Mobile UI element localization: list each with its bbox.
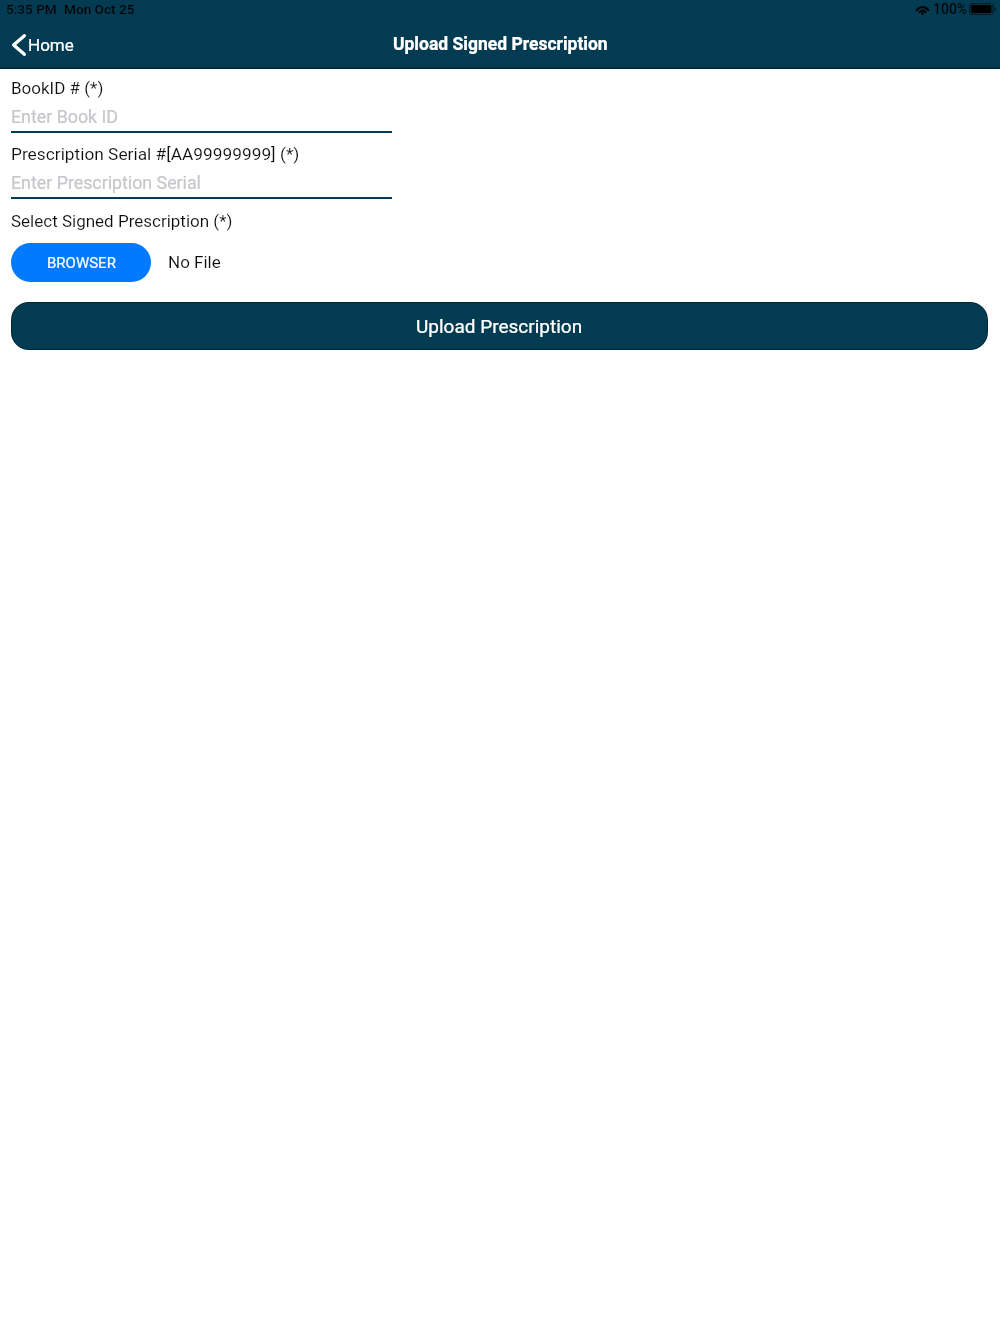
staticText: Select Signed Prescription (*) [11,211,233,231]
staticText: Enter Book ID [11,106,118,127]
staticText: Mon Oct 25 [64,1,135,17]
button[interactable]: Enter Book ID [11,102,392,134]
staticText: Home [28,35,74,55]
staticText: 100% [933,1,968,17]
staticText: Prescription Serial #[AA99999999] (*) [11,144,300,164]
staticText: BookID # (*) [11,78,104,98]
staticText: No File [168,252,221,272]
staticText: 5:35 PM [6,1,57,17]
staticText: Enter Prescription Serial [11,172,201,193]
other: Back [12,34,26,56]
staticText: Upload Prescription [416,315,583,337]
other: Wi-Fi [915,4,930,15]
button[interactable]: Enter Prescription Serial [11,168,392,200]
staticText: Upload Signed Prescription [393,34,608,55]
button[interactable]: Upload Prescription [12,303,987,349]
button[interactable]: Back [0,21,88,68]
staticText: BROWSER [47,254,116,272]
other: Battery full [969,3,996,15]
button[interactable]: BROWSER [11,243,151,282]
